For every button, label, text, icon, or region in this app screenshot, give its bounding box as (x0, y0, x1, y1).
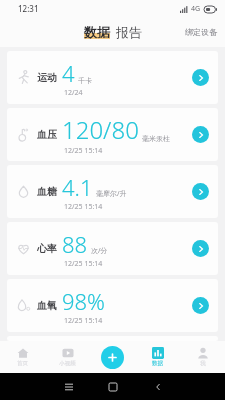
button[interactable]: 血糖 (7, 165, 218, 218)
staticText: 次/分 (91, 246, 108, 256)
button[interactable]: 绑定设备 (185, 27, 225, 37)
button[interactable]: 血压 (7, 108, 218, 161)
staticText: 血氧 (37, 299, 57, 312)
staticText: 首页 (17, 360, 28, 367)
button[interactable]: 查看心率 详情 (192, 240, 209, 257)
button[interactable]: 心率 (7, 222, 218, 275)
staticText: 毫摩尔/升 (96, 189, 127, 199)
staticText: 88 (62, 229, 88, 259)
staticText: 4 (62, 58, 75, 88)
staticText: 12/24 (64, 88, 83, 98)
staticText: 数据 (152, 360, 163, 367)
button[interactable]: 首页 (0, 341, 45, 373)
button[interactable]: 添加 (101, 346, 124, 369)
button[interactable]: 查看血压 详情 (192, 126, 209, 143)
staticText: 报告 (116, 24, 142, 40)
button[interactable]: 数据 (135, 341, 180, 373)
staticText: 4G (191, 4, 201, 14)
button[interactable]: 报告 (116, 24, 142, 40)
button[interactable]: 查看血氧 详情 (192, 297, 209, 314)
button[interactable]: 运动 (7, 51, 218, 104)
button[interactable]: 数据 (84, 24, 110, 40)
button[interactable]: 小视频 (45, 341, 90, 373)
staticText: 运动 (37, 71, 57, 84)
staticText: 千卡 (78, 76, 92, 85)
staticText: 12/25 15:14 (64, 316, 103, 326)
button[interactable]: 查看运动 详情 (192, 69, 209, 86)
button[interactable]: 最近任务 (61, 379, 77, 395)
staticText: 心率 (37, 242, 57, 255)
button[interactable]: 主页 (105, 379, 121, 395)
staticText: 我 (200, 360, 206, 367)
staticText: 12/25 15:14 (64, 259, 103, 269)
staticText: 12/25 15:14 (64, 202, 103, 212)
staticText: 12:31 (18, 3, 39, 14)
staticText: 血糖 (37, 185, 57, 198)
button[interactable]: 返回 (150, 379, 166, 395)
staticText: 血压 (37, 128, 57, 141)
staticText: 120/80 (62, 113, 139, 146)
staticText: 数据 (84, 24, 110, 40)
button[interactable]: 查看血糖 详情 (192, 183, 209, 200)
staticText: 毫米汞柱 (142, 134, 170, 143)
button[interactable]: 血氧 (7, 279, 218, 332)
staticText: 4.1 (62, 172, 93, 202)
staticText: 绑定设备 (185, 27, 217, 37)
staticText: 98% (62, 286, 105, 316)
staticText: 小视频 (59, 360, 76, 367)
button[interactable]: 我 (180, 341, 225, 373)
staticText: 12/25 15:14 (64, 146, 103, 156)
